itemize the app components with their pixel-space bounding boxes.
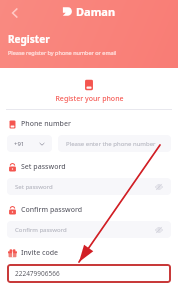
button[interactable]: Register your phone xyxy=(0,74,178,109)
staticText: Register your phone xyxy=(55,94,124,104)
staticText: +91 xyxy=(14,140,25,148)
button[interactable]: Back xyxy=(4,2,26,24)
button[interactable]: +91 xyxy=(7,135,52,152)
button[interactable]: Set password xyxy=(7,178,171,195)
staticText: 222479906566 xyxy=(15,269,60,278)
staticText: Confirm password xyxy=(21,205,83,215)
button[interactable]: 222479906566 xyxy=(7,264,171,283)
staticText: Please register by phone number or email xyxy=(8,49,117,56)
staticText: Invite code xyxy=(21,248,59,258)
button[interactable]: Show password xyxy=(154,225,163,234)
staticText: Please enter the phone number xyxy=(66,140,156,148)
staticText: Set password xyxy=(21,162,66,172)
button[interactable]: Please enter the phone number xyxy=(58,135,171,152)
staticText: Phone number xyxy=(21,119,71,129)
button[interactable]: Show password xyxy=(154,182,163,191)
staticText: Register xyxy=(8,32,50,46)
button[interactable]: Confirm password xyxy=(7,221,171,238)
staticText: Confirm password xyxy=(15,226,154,234)
staticText: Set password xyxy=(15,183,154,191)
staticText: Daman xyxy=(76,4,116,19)
